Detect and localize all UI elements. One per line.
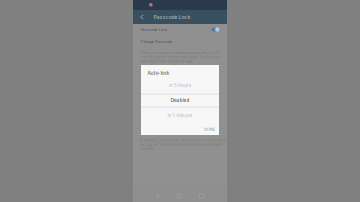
staticText: in 1 minute bbox=[167, 112, 192, 119]
staticText: icon will appear on the chats page. Tap … bbox=[140, 54, 220, 59]
button[interactable]: DONE bbox=[141, 125, 215, 133]
button[interactable]: in 5 hours bbox=[141, 81, 219, 89]
staticText: Disabled bbox=[170, 97, 189, 103]
staticText: in 5 hours bbox=[169, 82, 191, 88]
button[interactable]: in 1 minute bbox=[141, 112, 219, 120]
staticText: and unlock your Telegram app. bbox=[140, 58, 193, 63]
button[interactable]: Back bbox=[155, 193, 161, 199]
button[interactable]: Passcode Lock bbox=[133, 24, 227, 35]
staticText: If disabled, you won't be able to take s… bbox=[140, 137, 226, 143]
button[interactable]: Disabled bbox=[141, 96, 219, 104]
button[interactable]: Recent apps bbox=[199, 194, 203, 198]
button[interactable]: Change Passcode bbox=[133, 36, 227, 47]
button[interactable]: Home bbox=[177, 194, 182, 199]
staticText: DONE bbox=[204, 126, 215, 132]
staticText: switcher. bbox=[140, 145, 155, 151]
button[interactable]: Back bbox=[133, 10, 151, 24]
staticText: When you set up an additional passcode, … bbox=[140, 50, 219, 55]
staticText: Passcode Lock bbox=[153, 13, 190, 21]
staticText: Passcode Lock bbox=[140, 27, 167, 32]
staticText: Change Passcode bbox=[140, 39, 172, 44]
staticText: the app nor chat content will be hidden … bbox=[140, 141, 222, 147]
staticText: Auto-lock bbox=[147, 70, 169, 76]
